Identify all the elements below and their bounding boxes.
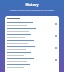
staticText: Webkey remote control available for this… <box>0 9 64 12</box>
button[interactable]: More options <box>7 63 57 69</box>
button[interactable]: More options <box>7 45 57 51</box>
button[interactable]: More options <box>7 57 57 63</box>
button[interactable]: More options <box>7 39 57 45</box>
button[interactable]: More options <box>7 51 57 57</box>
staticText: History <box>0 2 64 7</box>
button[interactable]: More options <box>7 33 57 39</box>
button[interactable]: More options <box>7 27 57 33</box>
button[interactable]: More options <box>7 21 57 27</box>
